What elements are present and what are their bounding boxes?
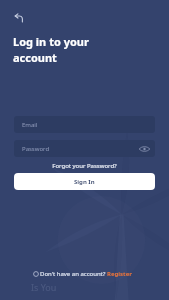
button[interactable]: Forgot your Password? <box>0 162 169 170</box>
button[interactable]: Sign In <box>14 173 155 190</box>
staticText: Log in to your account <box>13 34 89 65</box>
staticText: Register <box>107 270 132 278</box>
button[interactable]: Email <box>14 116 155 133</box>
staticText: Is You <box>31 281 57 293</box>
staticText: Email <box>22 121 38 129</box>
button[interactable]: Don't have an account? <box>40 270 132 278</box>
staticText: Password <box>22 145 50 153</box>
button[interactable]: Back <box>13 12 25 24</box>
button[interactable]: Show password <box>139 143 150 154</box>
button[interactable] <box>14 140 155 157</box>
staticText: Don't have an account? <box>40 270 107 278</box>
staticText: Sign In <box>74 178 95 186</box>
